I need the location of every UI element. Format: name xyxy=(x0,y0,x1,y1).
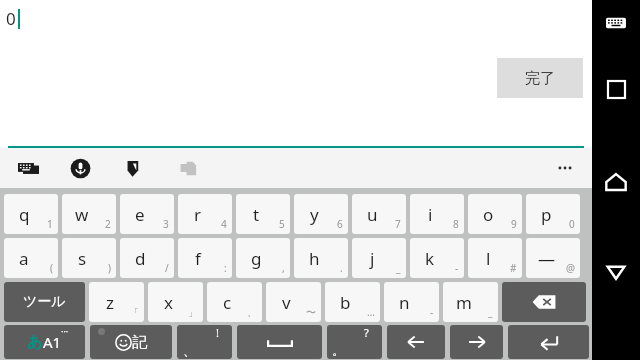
staticText: m xyxy=(456,291,472,314)
button[interactable]: a xyxy=(4,238,58,278)
staticText: 1 xyxy=(47,217,53,231)
staticText: 5 xyxy=(279,217,285,231)
staticText: ! xyxy=(216,325,219,340)
staticText: z xyxy=(106,291,114,314)
button[interactable]: — xyxy=(526,238,580,278)
staticText: / xyxy=(165,261,169,275)
staticText: 完了 xyxy=(525,69,555,88)
button[interactable]: e xyxy=(120,194,174,234)
button[interactable]: o xyxy=(468,194,522,234)
staticText: @ xyxy=(566,261,575,275)
button[interactable]: y xyxy=(294,194,348,234)
button[interactable]: Switch keyboard xyxy=(15,148,41,188)
button[interactable]: d xyxy=(120,238,174,278)
button[interactable]: b xyxy=(325,282,380,322)
button[interactable]: t xyxy=(236,194,290,234)
button[interactable]: Home xyxy=(599,165,633,199)
button[interactable]: n xyxy=(384,282,439,322)
staticText: g xyxy=(251,247,262,270)
staticText: a xyxy=(19,247,29,270)
staticText: 、 xyxy=(183,342,196,358)
button[interactable]: 。 xyxy=(327,325,382,359)
staticText: 8 xyxy=(453,217,459,231)
button[interactable]: Backspace xyxy=(502,282,586,322)
staticText: : xyxy=(224,261,227,275)
button[interactable]: x xyxy=(148,282,203,322)
staticText: k xyxy=(425,247,435,270)
staticText: x xyxy=(164,291,173,314)
button[interactable]: m xyxy=(443,282,498,322)
button[interactable]: Voice input xyxy=(67,148,93,188)
staticText: 6 xyxy=(337,217,343,231)
button[interactable]: r xyxy=(178,194,232,234)
staticText: 、 xyxy=(247,306,257,319)
staticText: j xyxy=(370,247,375,270)
staticText: A1 xyxy=(43,332,62,352)
button[interactable]: Translate xyxy=(175,148,201,188)
staticText: s xyxy=(78,247,87,270)
staticText: r xyxy=(194,203,202,226)
button[interactable]: f xyxy=(178,238,232,278)
staticText: 0 xyxy=(569,217,575,231)
button[interactable]: More options xyxy=(549,148,581,188)
button[interactable]: 記 xyxy=(90,325,172,359)
staticText: 7 xyxy=(395,217,401,231)
staticText: 3 xyxy=(163,217,169,231)
staticText: c xyxy=(223,291,232,314)
staticText: 9 xyxy=(511,217,517,231)
staticText: ツール xyxy=(23,293,66,311)
staticText: p xyxy=(541,203,552,226)
staticText: o xyxy=(483,203,494,226)
button[interactable]: Move cursor left xyxy=(387,325,445,359)
button[interactable]: 、 xyxy=(177,325,232,359)
staticText: 4 xyxy=(221,217,227,231)
button[interactable]: l xyxy=(468,238,522,278)
button[interactable]: k xyxy=(410,238,464,278)
button[interactable]: v xyxy=(266,282,321,322)
button[interactable]: i xyxy=(410,194,464,234)
button[interactable]: u xyxy=(352,194,406,234)
button[interactable]: c xyxy=(207,282,262,322)
button[interactable]: ツール xyxy=(4,282,85,322)
staticText: f xyxy=(195,247,201,270)
button[interactable]: Move cursor right xyxy=(450,325,503,359)
button[interactable]: p xyxy=(526,194,580,234)
staticText: t xyxy=(253,203,260,226)
staticText: 2 xyxy=(105,217,111,231)
staticText: — xyxy=(538,247,555,270)
button[interactable]: あ xyxy=(4,325,85,359)
staticText: 」 xyxy=(188,306,198,319)
staticText: ) xyxy=(108,261,111,275)
button[interactable]: Space xyxy=(237,325,322,359)
button[interactable]: Back xyxy=(599,255,633,289)
button[interactable]: 完了 xyxy=(497,58,583,98)
button[interactable]: Recents xyxy=(599,72,633,106)
button[interactable]: w xyxy=(62,194,116,234)
button[interactable]: s xyxy=(62,238,116,278)
staticText: d xyxy=(135,247,146,270)
staticText: … xyxy=(367,305,375,319)
staticText: v xyxy=(282,291,291,314)
button[interactable]: g xyxy=(236,238,290,278)
staticText: w xyxy=(75,203,89,226)
staticText: , xyxy=(282,261,285,275)
button[interactable]: j xyxy=(352,238,406,278)
staticText: 記 xyxy=(132,333,147,352)
staticText: - xyxy=(430,305,434,319)
staticText: ··· xyxy=(61,325,69,337)
staticText: - xyxy=(455,261,459,275)
button[interactable]: q xyxy=(4,194,58,234)
staticText: e xyxy=(135,203,145,226)
staticText: u xyxy=(367,203,378,226)
staticText: _ xyxy=(396,261,401,275)
staticText: ( xyxy=(50,261,53,275)
button[interactable]: Hide keyboard xyxy=(602,9,630,37)
button[interactable]: z xyxy=(89,282,144,322)
staticText: h xyxy=(309,247,320,270)
button[interactable]: h xyxy=(294,238,348,278)
button[interactable]: Clipboard xyxy=(119,148,145,188)
button[interactable]: Enter xyxy=(508,325,589,359)
staticText: b xyxy=(340,291,351,314)
staticText: あ xyxy=(27,333,43,352)
staticText: 。 xyxy=(332,342,345,358)
